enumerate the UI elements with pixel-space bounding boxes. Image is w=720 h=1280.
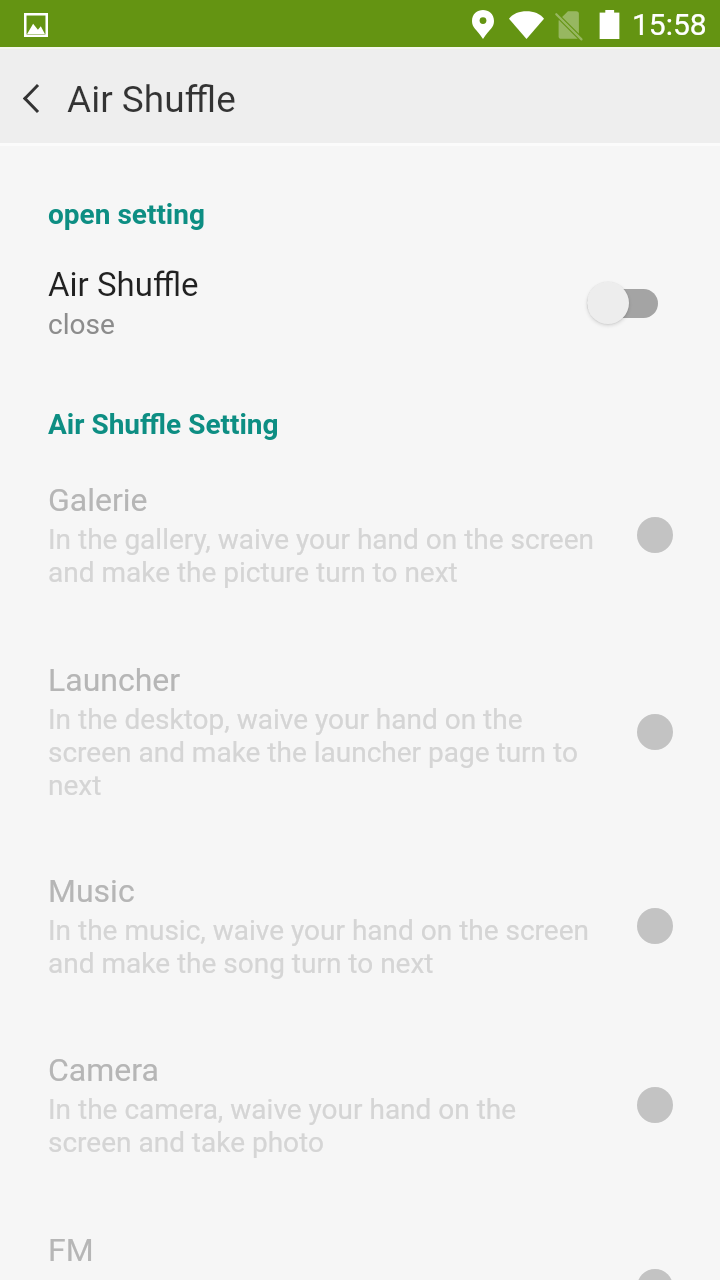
button[interactable]: Galerie bbox=[0, 481, 720, 589]
staticText: 15:58 bbox=[632, 7, 707, 42]
staticText: open setting bbox=[48, 198, 205, 231]
button[interactable]: Music bbox=[0, 872, 720, 980]
staticText: Air Shuffle bbox=[48, 264, 199, 304]
staticText: In the music, waive your hand on the scr… bbox=[48, 914, 598, 980]
staticText: Air Shuffle bbox=[67, 78, 236, 121]
button[interactable]: Air Shuffle bbox=[0, 264, 720, 342]
staticText: Camera bbox=[48, 1051, 159, 1089]
staticText: Launcher bbox=[48, 661, 181, 699]
staticText: Air Shuffle Setting bbox=[48, 408, 279, 441]
staticText: In the gallery, waive your hand on the s… bbox=[48, 523, 598, 589]
button[interactable]: Launcher bbox=[0, 661, 720, 802]
staticText: close bbox=[48, 304, 115, 342]
staticText: In the camera, waive your hand on the sc… bbox=[48, 1093, 598, 1159]
staticText: In the desktop, waive your hand on the s… bbox=[48, 703, 598, 802]
button[interactable]: Camera bbox=[0, 1051, 720, 1159]
staticText: FM bbox=[48, 1231, 94, 1269]
staticText: Galerie bbox=[48, 481, 148, 519]
button[interactable]: FM bbox=[0, 1231, 720, 1280]
button[interactable]: Back bbox=[5, 72, 57, 124]
staticText: Music bbox=[48, 872, 135, 910]
button[interactable]: Air Shuffle toggle bbox=[587, 282, 658, 324]
